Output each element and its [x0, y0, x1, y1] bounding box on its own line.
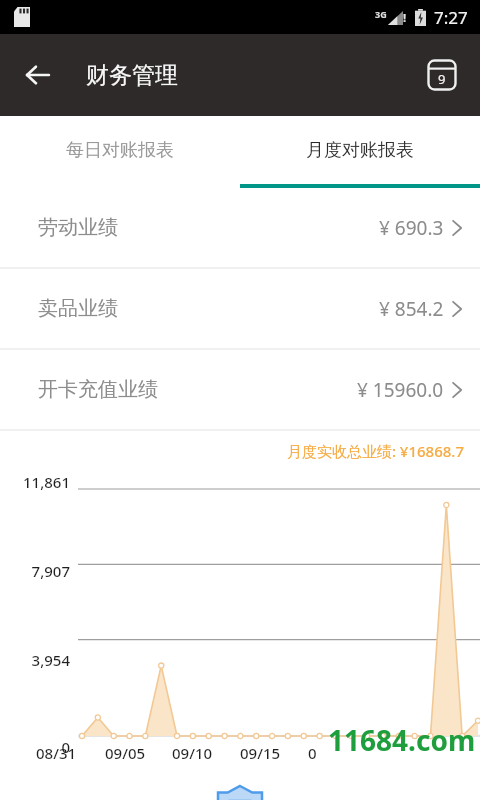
staticText: 09/10: [172, 743, 213, 763]
staticText: 3G: [375, 8, 387, 20]
staticText: 0: [0, 737, 70, 757]
staticText: ¥ 690.3: [379, 215, 444, 241]
button[interactable]: 月度对账报表: [240, 116, 480, 184]
staticText: 09/15: [240, 743, 281, 763]
staticText: 卖品业绩: [38, 296, 118, 321]
staticText: 09/05: [105, 743, 146, 763]
button[interactable]: 每日对账报表: [0, 116, 240, 184]
staticText: 开卡充值业绩: [38, 377, 158, 402]
staticText: 9: [438, 70, 446, 88]
staticText: 劳动业绩: [38, 215, 118, 240]
staticText: 7,907: [0, 561, 70, 581]
staticText: ¥ 15960.0: [357, 377, 444, 403]
staticText: ¥ 854.2: [379, 296, 444, 322]
button[interactable]: Back: [14, 51, 62, 99]
staticText: 每日对账报表: [66, 139, 174, 162]
staticText: 月度对账报表: [306, 139, 414, 162]
button[interactable]: 劳动业绩: [0, 188, 480, 267]
button[interactable]: Select date: [416, 49, 468, 101]
staticText: 11684.com: [328, 721, 476, 759]
staticText: 7:27: [434, 6, 468, 29]
button[interactable]: 卖品业绩: [0, 269, 480, 348]
staticText: 3,954: [0, 650, 70, 670]
staticText: 08/31: [36, 743, 77, 763]
staticText: !: [403, 10, 407, 25]
staticText: 0: [308, 743, 317, 763]
staticText: 11,861: [0, 472, 70, 492]
staticText: 财务管理: [86, 61, 178, 90]
staticText: 月度实收总业绩: ¥16868.7: [0, 441, 464, 461]
button[interactable]: 开卡充值业绩: [0, 350, 480, 429]
